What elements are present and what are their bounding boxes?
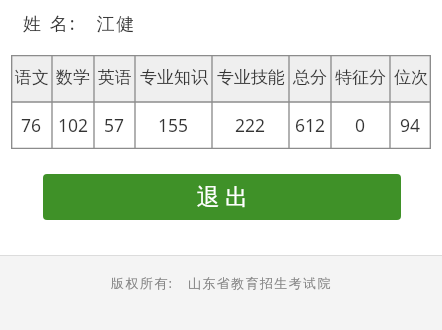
staticText: 222 <box>235 113 266 137</box>
staticText: 退出 <box>194 183 251 212</box>
staticText: 102 <box>58 113 89 137</box>
staticText: 57 <box>104 113 125 137</box>
button[interactable]: 专业技能 <box>212 55 289 102</box>
staticText: 专业技能 <box>217 67 285 88</box>
button[interactable]: 76 <box>11 102 52 149</box>
staticText: 155 <box>158 113 189 137</box>
button[interactable]: 语文 <box>11 55 52 102</box>
button[interactable]: 英语 <box>94 55 135 102</box>
button[interactable]: 612 <box>289 102 331 149</box>
staticText: 612 <box>295 113 326 137</box>
staticText: 特征分 <box>335 67 386 88</box>
staticText: 数学 <box>56 67 90 88</box>
staticText: 总分 <box>293 67 327 88</box>
button[interactable]: 专业知识 <box>135 55 212 102</box>
staticText: 76 <box>21 113 42 137</box>
button[interactable]: 94 <box>390 102 431 149</box>
staticText: 版权所有: 山东省教育招生考试院 <box>111 274 332 292</box>
button[interactable]: 222 <box>212 102 289 149</box>
staticText: 语文 <box>15 67 49 88</box>
button[interactable]: 特征分 <box>331 55 390 102</box>
button[interactable]: 102 <box>52 102 94 149</box>
button[interactable]: 总分 <box>289 55 331 102</box>
button[interactable]: 位次 <box>390 55 431 102</box>
button[interactable]: 57 <box>94 102 135 149</box>
staticText: 专业知识 <box>140 67 208 88</box>
button[interactable]: 0 <box>331 102 390 149</box>
staticText: 94 <box>400 113 421 137</box>
staticText: 0 <box>355 113 366 137</box>
staticText: 姓 名: 江健 <box>23 11 137 36</box>
button[interactable]: 数学 <box>52 55 94 102</box>
button[interactable]: 退出 <box>43 174 401 220</box>
staticText: 英语 <box>98 67 132 88</box>
button[interactable]: 155 <box>135 102 212 149</box>
staticText: 位次 <box>394 67 428 88</box>
